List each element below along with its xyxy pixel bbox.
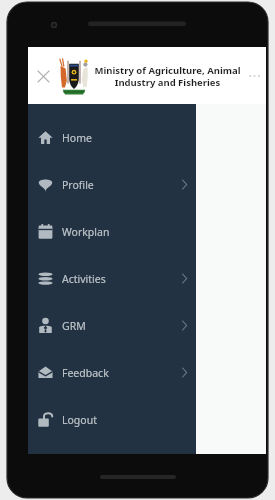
- button[interactable]: Activities: [28, 255, 196, 302]
- button[interactable]: Logout: [28, 396, 196, 443]
- button[interactable]: Home: [28, 114, 196, 161]
- staticText: Ministry of Agriculture, Animal Industry…: [94, 64, 241, 89]
- button[interactable]: Profile: [28, 161, 196, 208]
- staticText: Logout: [62, 413, 187, 427]
- button[interactable]: More options: [242, 64, 266, 88]
- staticText: Workplan: [62, 225, 187, 239]
- button[interactable]: GRM: [28, 302, 196, 349]
- staticText: Feedback: [62, 366, 182, 380]
- staticText: Profile: [62, 178, 182, 192]
- button[interactable]: Feedback: [28, 349, 196, 396]
- staticText: Home: [62, 131, 187, 145]
- button[interactable]: Workplan: [28, 208, 196, 255]
- button[interactable]: Close: [30, 63, 56, 89]
- staticText: Activities: [62, 272, 182, 286]
- staticText: GRM: [62, 319, 182, 333]
